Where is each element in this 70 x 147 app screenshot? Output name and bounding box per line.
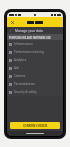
other: Back: [9, 29, 13, 33]
button[interactable]: Back: [7, 27, 63, 34]
staticText: Infrastructure: [14, 42, 33, 46]
staticText: Security & safety: [14, 90, 37, 94]
button[interactable]: Infrastructure: [7, 40, 63, 48]
staticText: PURPOSES WE AND PARTNERS USE: [9, 36, 51, 39]
button[interactable]: Performance tracking: [7, 48, 63, 56]
staticText: Personalisation: [14, 82, 35, 86]
staticText: Ads: [14, 66, 20, 70]
button[interactable]: CONFIRM CHOICES: [10, 122, 60, 129]
button[interactable]: Ads: [7, 64, 63, 72]
staticText: CONFIRM CHOICES: [23, 124, 48, 128]
button[interactable]: Content: [7, 72, 63, 80]
button[interactable]: Personalisation: [7, 80, 63, 88]
button[interactable]: Security & safety: [7, 88, 63, 96]
staticText: Performance tracking: [14, 50, 44, 54]
button[interactable]: Close: [9, 19, 16, 26]
staticText: Analytics: [14, 58, 27, 62]
staticText: Content: [14, 74, 25, 78]
button[interactable]: Analytics: [7, 56, 63, 64]
staticText: Manage your data: [15, 29, 43, 33]
